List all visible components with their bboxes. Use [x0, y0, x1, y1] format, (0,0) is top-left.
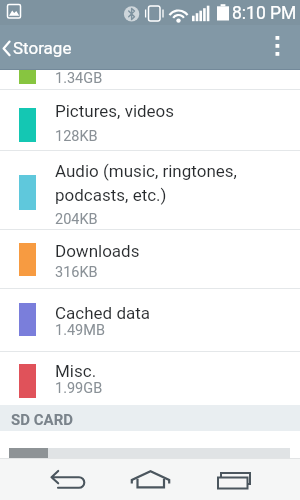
button[interactable] — [30, 462, 100, 498]
button[interactable] — [0, 229, 300, 288]
staticText: 204KB — [55, 211, 98, 228]
button[interactable] — [115, 462, 185, 498]
staticText: Pictures, videos — [55, 101, 175, 121]
staticText: 316KB — [55, 264, 98, 281]
staticText: SD CARD — [11, 411, 73, 429]
button[interactable] — [0, 90, 300, 150]
staticText: 1.99GB — [55, 380, 103, 397]
staticText: podcasts, etc.) — [55, 185, 167, 205]
button[interactable] — [0, 70, 300, 90]
button[interactable] — [262, 25, 300, 70]
staticText: Storage — [13, 38, 72, 58]
button[interactable] — [0, 150, 300, 229]
staticText: 1.49MB — [55, 322, 105, 339]
staticText: Misc. — [55, 361, 97, 381]
button[interactable] — [0, 351, 300, 405]
button[interactable] — [0, 288, 300, 351]
staticText: Downloads — [55, 241, 140, 261]
staticText: 1.34GB — [55, 70, 103, 87]
staticText: 8:10 PM — [232, 3, 297, 24]
staticText: Audio (music, ringtones, — [55, 161, 237, 181]
staticText: 128KB — [55, 128, 98, 145]
button[interactable] — [196, 462, 266, 498]
button[interactable] — [0, 25, 90, 70]
staticText: Cached data — [55, 303, 151, 323]
